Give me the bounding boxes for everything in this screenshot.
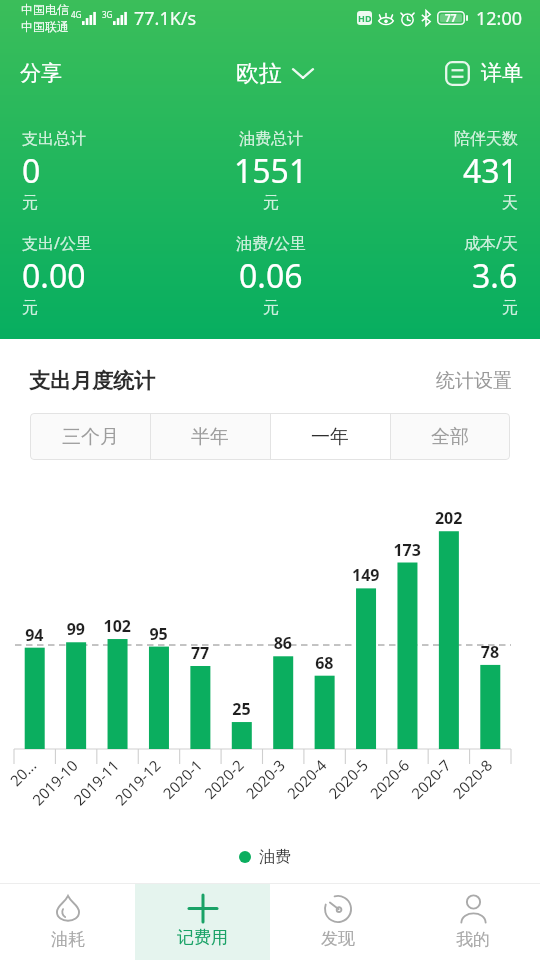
staticText: 天 [502, 193, 518, 213]
staticText: 0 [22, 149, 41, 193]
button[interactable]: 记费用 [135, 884, 270, 960]
button[interactable]: 分享 [20, 60, 62, 86]
staticText: 半年 [191, 425, 229, 449]
staticText: 支出/公里 [22, 232, 92, 254]
staticText: 0.00 [22, 254, 86, 298]
staticText: HD [358, 12, 372, 24]
staticText: 4G [71, 9, 82, 20]
staticText: 分享 [20, 60, 62, 86]
staticText: 我的 [456, 929, 490, 950]
staticText: 元 [263, 298, 279, 318]
button[interactable]: 油耗 [0, 884, 135, 960]
staticText: 支出总计 [22, 129, 86, 149]
button[interactable]: 发现 [270, 884, 405, 960]
staticText: 详单 [481, 60, 523, 86]
staticText: 12:00 [476, 6, 523, 31]
staticText: 成本/天 [464, 232, 518, 254]
staticText: 431 [463, 149, 518, 193]
staticText: 油费总计 [239, 129, 303, 149]
staticText: 77 [445, 11, 457, 25]
staticText: 支出月度统计 [29, 368, 155, 394]
staticText: 元 [502, 298, 518, 318]
staticText: 元 [22, 298, 38, 318]
other: 发现 [324, 895, 352, 923]
staticText: 元 [22, 193, 38, 213]
staticText: 中国联通 [21, 19, 69, 34]
button[interactable]: 全部 [390, 413, 510, 460]
other: 我的 [460, 895, 487, 924]
staticText: 一年 [311, 425, 349, 449]
staticText: 3.6 [472, 254, 518, 298]
staticText: 三个月 [62, 425, 119, 449]
staticText: 元 [263, 193, 279, 213]
button[interactable]: 三个月 [30, 413, 150, 460]
other: 油耗 [56, 895, 80, 924]
staticText: 欧拉 [236, 59, 282, 88]
staticText: 油耗 [51, 929, 85, 950]
button[interactable]: 半年 [150, 413, 270, 460]
staticText: 统计设置 [436, 369, 512, 393]
button[interactable]: 统计设置 [436, 369, 512, 393]
staticText: 陪伴天数 [454, 129, 518, 149]
staticText: 中国电信 [21, 2, 69, 17]
staticText: 全部 [431, 425, 469, 449]
staticText: 油费 [259, 847, 291, 867]
staticText: 发现 [321, 928, 355, 949]
staticText: 0.06 [239, 254, 303, 298]
staticText: 77.1K/s [134, 6, 197, 31]
staticText: 记费用 [177, 927, 228, 948]
button[interactable]: 我的 [405, 884, 540, 960]
staticText: 1551 [234, 149, 308, 193]
button[interactable]: 详单 [445, 60, 523, 86]
staticText: 油费/公里 [236, 232, 306, 254]
button[interactable]: 一年 [270, 413, 390, 460]
staticText: 3G [102, 9, 113, 20]
button[interactable]: 欧拉 [236, 59, 313, 88]
other: 记费用 [189, 895, 217, 922]
